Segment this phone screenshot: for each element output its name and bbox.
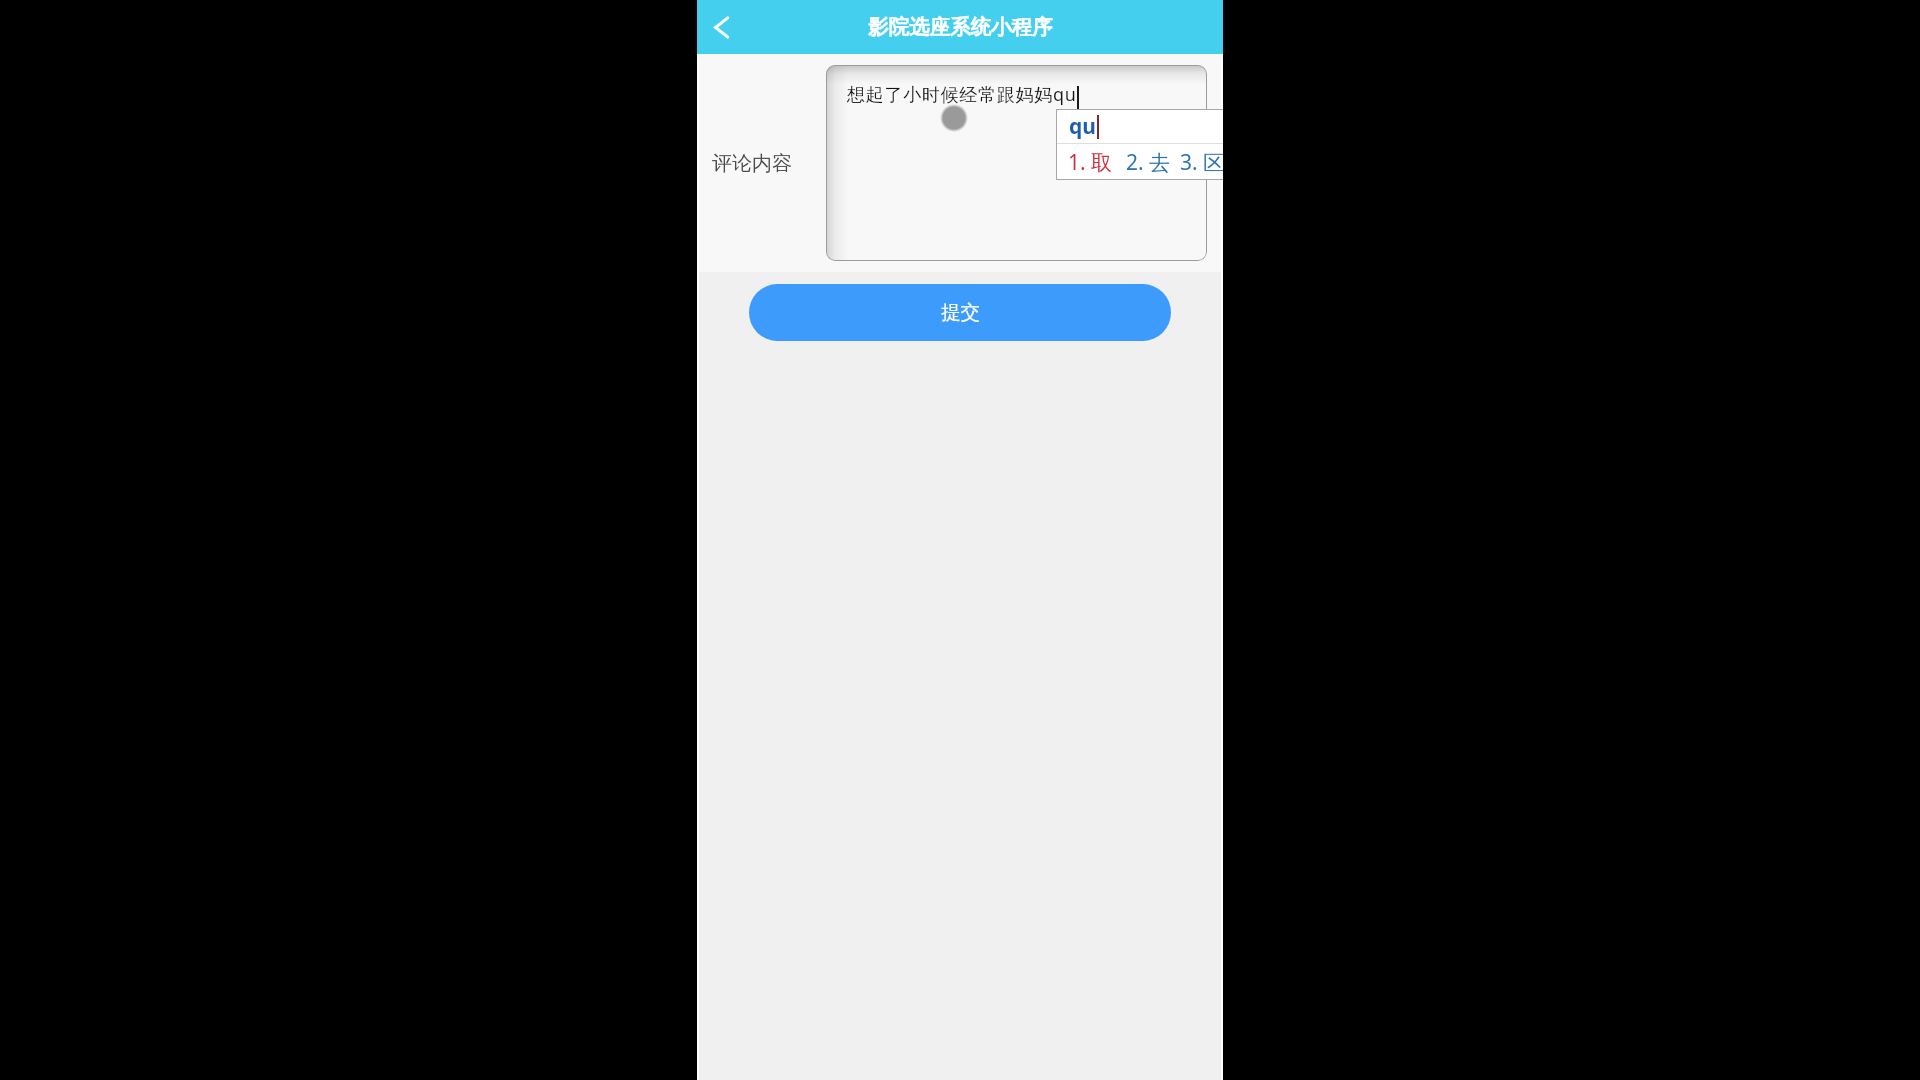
staticText: 评论内容 [712, 151, 792, 176]
staticText: 想起了小时候经常跟妈妈qu [847, 82, 1077, 107]
button[interactable]: 3. 区 [1180, 148, 1223, 177]
button[interactable] [826, 65, 1207, 261]
staticText: 提交 [941, 300, 980, 325]
staticText: qu [1069, 112, 1096, 141]
button[interactable]: Back [699, 5, 743, 49]
button[interactable]: 1. 取 [1068, 148, 1113, 177]
button[interactable]: 提交 [749, 284, 1171, 341]
staticText: 3. 区 [1180, 148, 1223, 177]
staticText: 影院选座系统小程序 [868, 14, 1053, 40]
staticText: 1. 取 [1068, 148, 1113, 177]
button[interactable]: 2. 去 [1126, 148, 1171, 177]
staticText: 2. 去 [1126, 148, 1171, 177]
